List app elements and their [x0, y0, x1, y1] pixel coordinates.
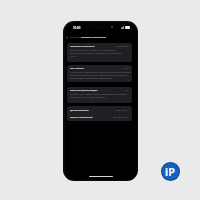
- staticText: а также может снижаться производительнос…: [70, 77, 113, 80]
- staticText: Чем меньше ёмкость, тем чаще требуется з…: [70, 74, 128, 77]
- staticText: Аккумулятор: [69, 36, 82, 39]
- staticText: Состояние аккумулятора: [81, 36, 106, 39]
- staticText: Нормальное: [116, 45, 129, 48]
- button[interactable]: Дата изготовления: [67, 106, 132, 114]
- staticText: Первое использование: [70, 116, 93, 119]
- staticText: 148: [125, 89, 129, 92]
- staticText: Макс. ёмкость: [70, 67, 84, 70]
- staticText: 92 %: [124, 67, 129, 70]
- button[interactable]: Состояние аккумулятора: [67, 43, 132, 62]
- staticText: сентябрь 2023 г.: [113, 116, 129, 119]
- staticText: Количество циклов зарядки: [70, 89, 98, 92]
- staticText: дополнительных сведений перейдите на сай…: [70, 52, 122, 55]
- staticText: июнь 2023 г.: [116, 109, 129, 112]
- staticText: Аккумулятор работает нормально. Для полу…: [70, 49, 116, 52]
- staticText: iP: [165, 164, 176, 179]
- button[interactable]: Макс. ёмкость: [67, 65, 132, 82]
- staticText: Apple.: [70, 55, 76, 58]
- button[interactable]: Количество циклов зарядки: [67, 87, 132, 103]
- staticText: Состояние аккумулятора: [70, 45, 95, 48]
- staticText: Это общее число циклов зарядки, пройденн…: [70, 93, 127, 96]
- staticText: Дата изготовления: [70, 109, 89, 112]
- button[interactable]: Первое использование: [67, 114, 132, 121]
- button[interactable]: Аккумулятор: [66, 35, 82, 40]
- staticText: 21:03: [73, 26, 81, 30]
- staticText: Эта величина отражает ёмкость аккумулято…: [70, 71, 131, 74]
- staticText: за время его эксплуатации. Подробнее: [70, 96, 106, 99]
- button[interactable]: iPhones.ru logo: [161, 162, 180, 181]
